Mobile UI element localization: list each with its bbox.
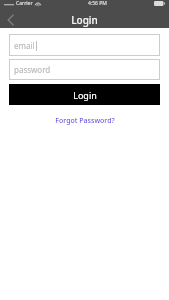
button[interactable]: Back <box>0 11 20 28</box>
staticText: email <box>14 40 35 51</box>
staticText: Forgot Password? <box>55 116 115 126</box>
button[interactable]: email <box>9 34 160 56</box>
button[interactable]: Login <box>9 84 160 105</box>
staticText: Login <box>73 89 97 101</box>
button[interactable]: Forgot Password? <box>53 115 117 127</box>
staticText: Carrier <box>16 0 33 7</box>
staticText: 4:56 PM <box>88 0 107 7</box>
staticText: Login <box>71 13 98 27</box>
staticText: password <box>14 64 51 75</box>
button[interactable]: password <box>9 59 160 80</box>
